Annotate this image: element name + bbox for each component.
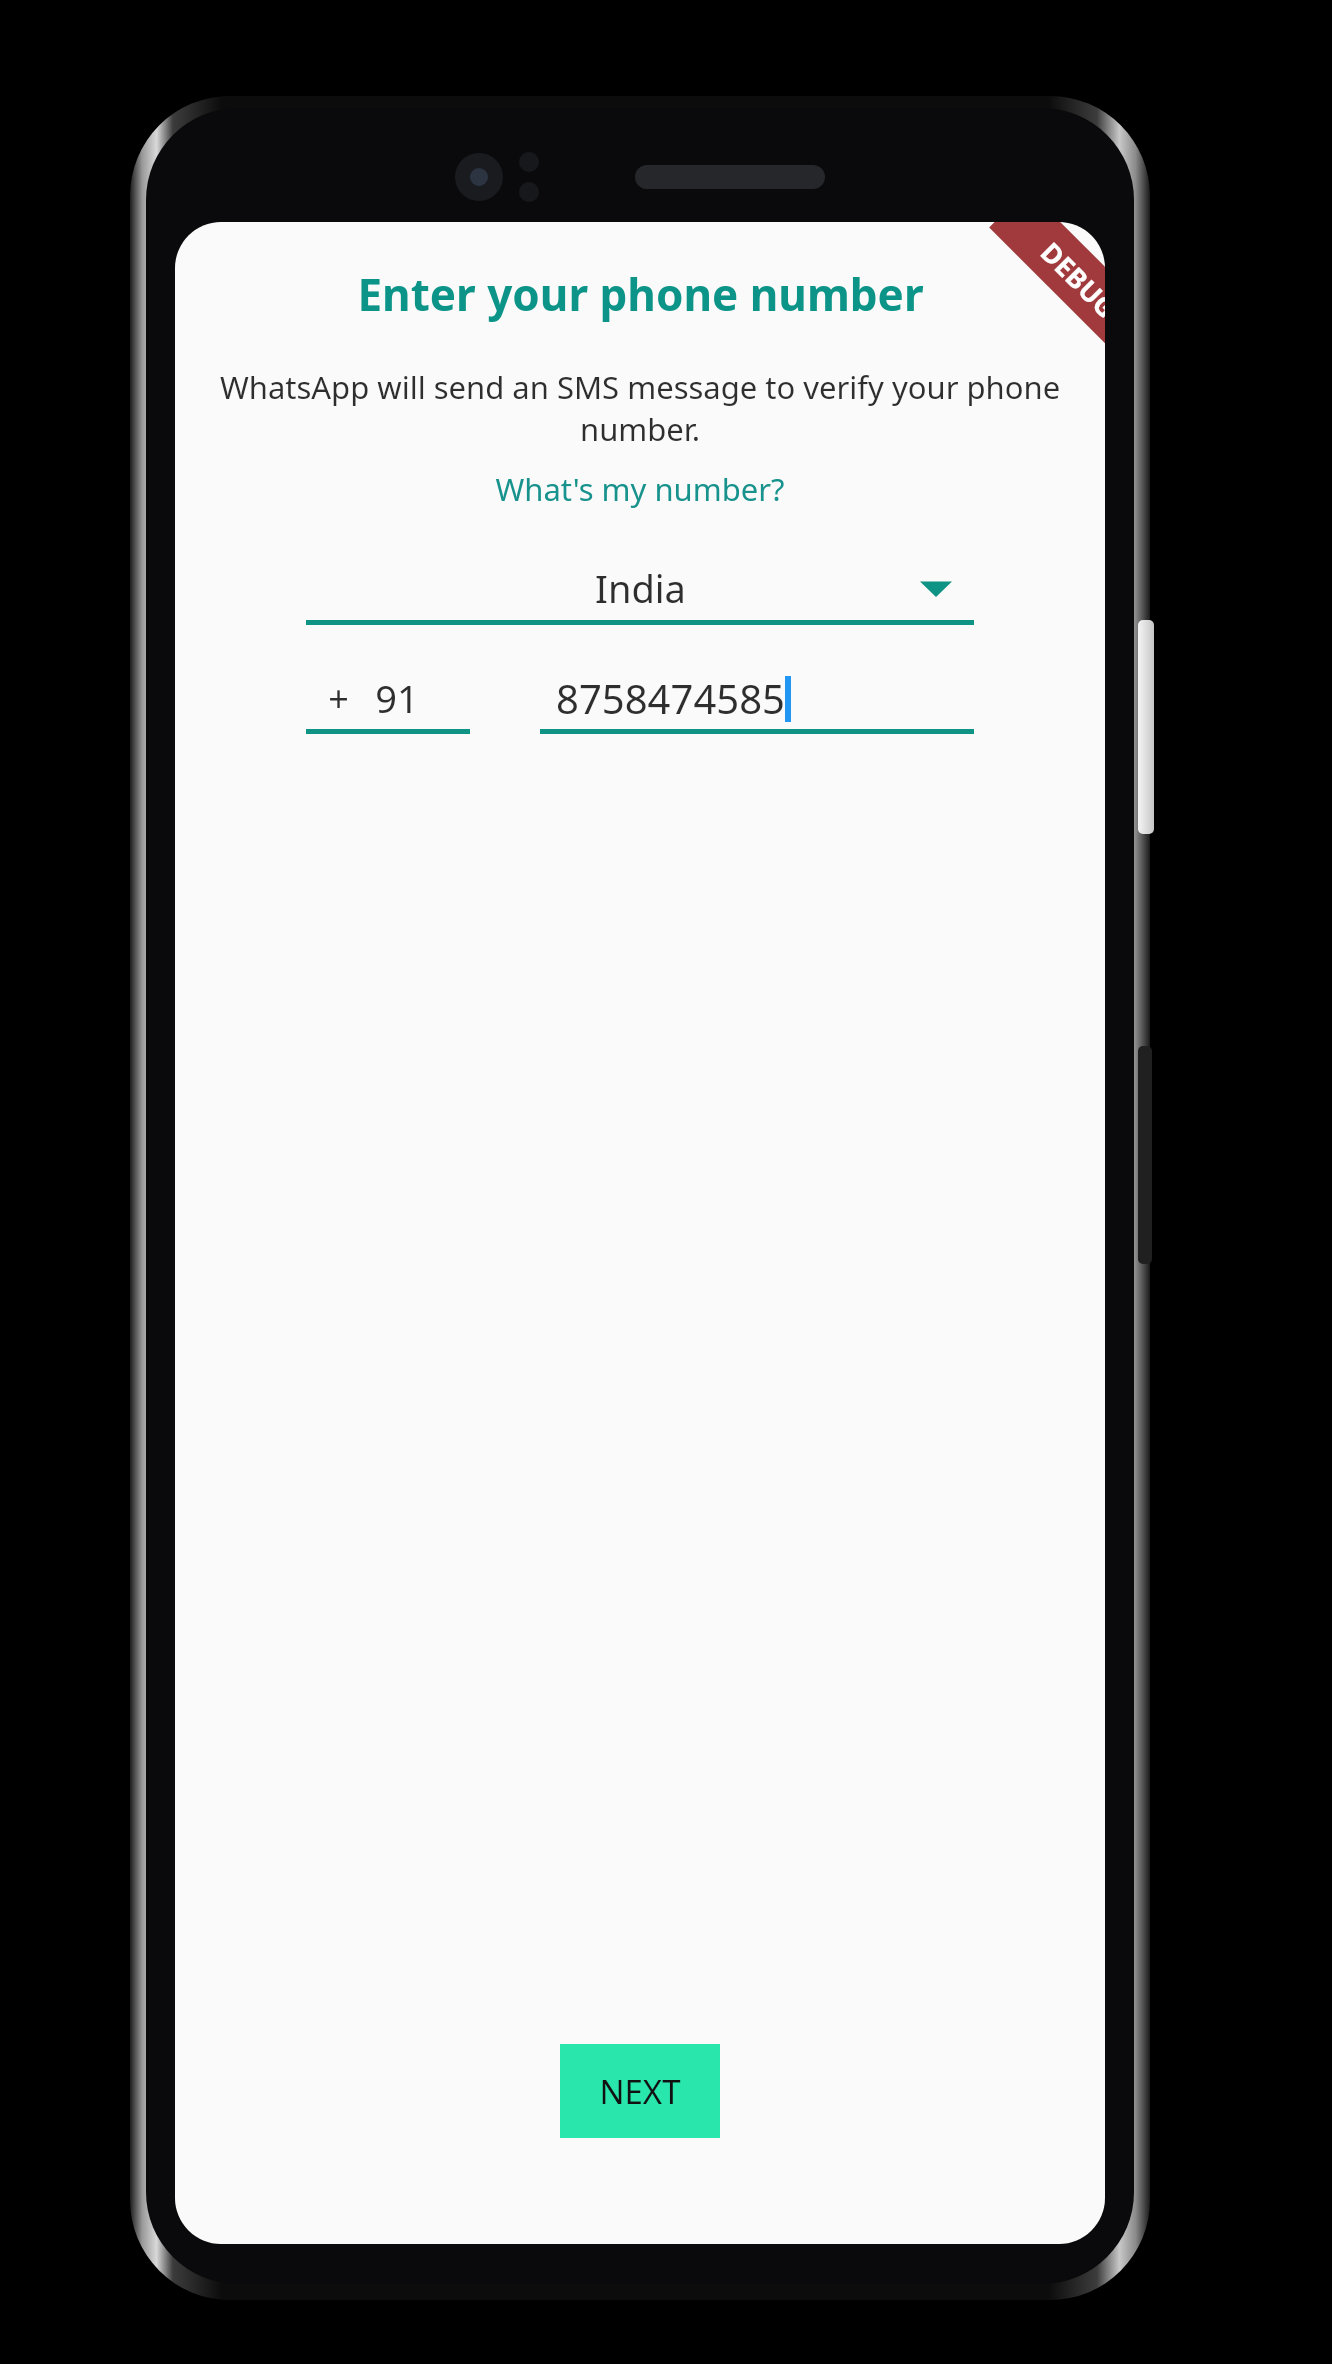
button[interactable]: 8758474585	[540, 667, 974, 734]
staticText: WhatsApp will send an SMS message to ver…	[179, 366, 1101, 450]
staticText: DEBUG	[1033, 234, 1105, 326]
staticText: NEXT	[599, 2069, 681, 2114]
staticText: India	[595, 562, 686, 614]
other: Select country	[914, 566, 958, 610]
staticText: 8758474585	[556, 671, 785, 725]
button[interactable]: What's my number?	[487, 466, 793, 512]
staticText: Enter your phone number	[357, 264, 924, 324]
button[interactable]: Enter your phone number	[175, 258, 1105, 330]
button[interactable]: India	[306, 556, 974, 625]
button[interactable]: NEXT	[560, 2044, 720, 2138]
button[interactable]: +	[306, 667, 470, 734]
staticText: +	[328, 674, 349, 723]
staticText: 91	[375, 672, 419, 724]
staticText: What's my number?	[495, 468, 785, 510]
